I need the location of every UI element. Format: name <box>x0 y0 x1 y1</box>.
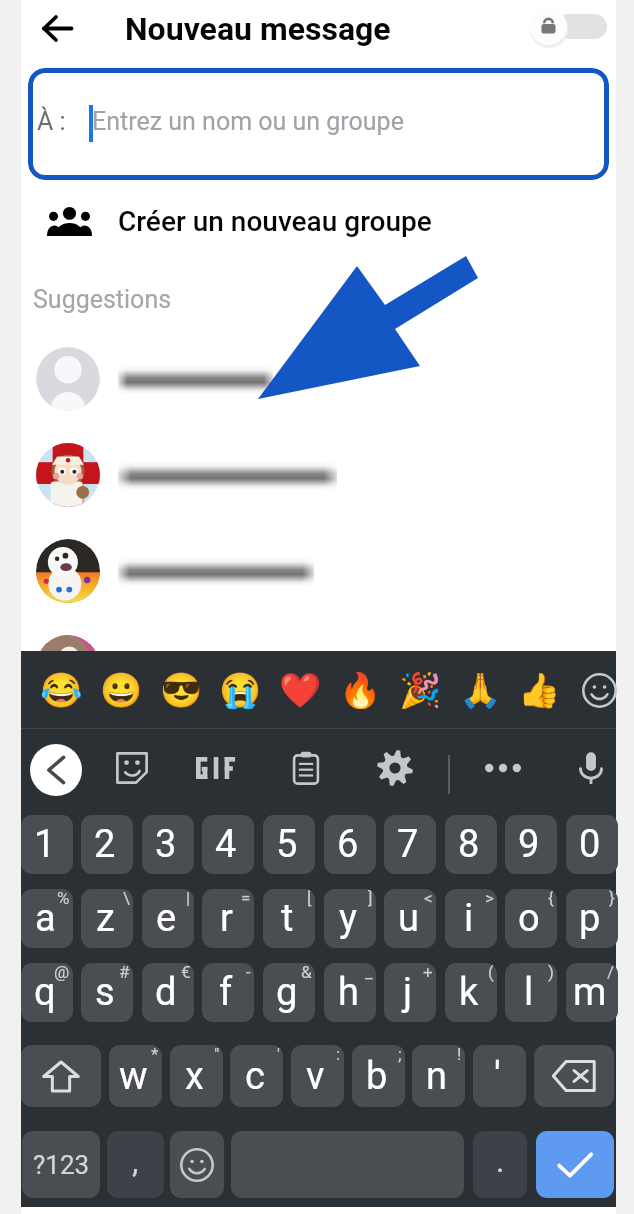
staticText: 8 <box>458 822 480 867</box>
button[interactable]: Emoji <box>452 651 508 729</box>
button[interactable]: u <box>384 889 436 948</box>
staticText: Nouveau message <box>125 10 391 48</box>
staticText: _ <box>365 963 373 982</box>
button[interactable]: d <box>142 963 194 1022</box>
staticText: - <box>246 963 251 982</box>
staticText: 3 <box>155 822 177 867</box>
button[interactable]: 2 <box>81 815 133 874</box>
button[interactable]: Emoji <box>392 651 448 729</box>
button[interactable]: Back <box>31 2 83 54</box>
staticText: 😎 <box>160 670 203 710</box>
staticText: s <box>95 970 115 1015</box>
button[interactable]: 9 <box>505 815 557 874</box>
button[interactable] <box>21 346 616 442</box>
button[interactable]: More emoji <box>571 651 627 729</box>
staticText: ! <box>457 1045 462 1064</box>
button[interactable]: 8 <box>445 815 497 874</box>
button[interactable]: Emoji <box>272 651 328 729</box>
button[interactable]: s <box>81 963 133 1022</box>
staticText: = <box>241 889 251 908</box>
button[interactable]: Secret conversation <box>523 0 607 56</box>
button[interactable]: Créer un nouveau groupe <box>21 186 616 256</box>
staticText: # <box>119 963 130 982</box>
button[interactable]: 1 <box>21 815 73 874</box>
button[interactable]: t <box>263 889 315 948</box>
staticText: % <box>57 889 70 908</box>
staticText: 1 <box>34 822 56 867</box>
staticText: ; <box>398 1045 402 1064</box>
button[interactable]: Emoji <box>511 651 567 729</box>
staticText: . <box>496 1142 505 1180</box>
button[interactable]: À : <box>28 68 609 180</box>
button[interactable]: Send <box>536 1131 614 1198</box>
button[interactable]: l <box>505 963 557 1022</box>
staticText: c <box>245 1054 265 1099</box>
button[interactable]: Shift <box>21 1045 101 1107</box>
button[interactable]: 0 <box>566 815 618 874</box>
button[interactable]: Settings <box>367 742 423 794</box>
button[interactable]: . <box>473 1131 527 1198</box>
button[interactable]: g <box>263 963 315 1022</box>
button[interactable]: v <box>291 1045 344 1107</box>
button[interactable]: Voice input <box>563 742 619 794</box>
button[interactable]: e <box>142 889 194 948</box>
staticText: i <box>464 896 474 941</box>
button[interactable]: , <box>107 1131 164 1198</box>
button[interactable]: i <box>445 889 497 948</box>
button[interactable]: ?123 <box>22 1131 100 1198</box>
button[interactable]: Emoji keyboard <box>170 1131 224 1198</box>
button[interactable]: r <box>202 889 254 948</box>
button[interactable]: Emoji <box>332 651 388 729</box>
button[interactable]: 3 <box>142 815 194 874</box>
staticText: [ <box>307 889 312 908</box>
button[interactable]: n <box>412 1045 465 1107</box>
button[interactable]: GIF <box>184 742 248 794</box>
button[interactable]: Back to keyboard <box>30 744 82 796</box>
button[interactable]: p <box>566 889 618 948</box>
button[interactable]: More options <box>475 742 531 794</box>
button[interactable]: ' <box>473 1045 526 1107</box>
button[interactable]: j <box>384 963 436 1022</box>
button[interactable] <box>21 634 616 730</box>
button[interactable] <box>21 442 616 538</box>
button[interactable]: q <box>21 963 73 1022</box>
button[interactable]: 6 <box>324 815 376 874</box>
button[interactable]: 4 <box>202 815 254 874</box>
staticText: 0 <box>579 822 601 867</box>
staticText: p <box>579 896 601 941</box>
button[interactable]: Stickers <box>104 742 160 794</box>
staticText: 4 <box>215 822 237 867</box>
button[interactable]: a <box>21 889 73 948</box>
button[interactable]: 5 <box>263 815 315 874</box>
staticText: 👍 <box>518 670 561 710</box>
button[interactable]: Emoji <box>93 651 149 729</box>
staticText: { <box>548 889 554 908</box>
button[interactable]: Emoji <box>153 651 209 729</box>
staticText: ] <box>368 889 373 908</box>
button[interactable]: w <box>109 1045 162 1107</box>
button[interactable]: y <box>324 889 376 948</box>
button[interactable] <box>21 538 616 634</box>
button[interactable]: c <box>230 1045 283 1107</box>
button[interactable]: 7 <box>384 815 436 874</box>
staticText: u <box>398 896 419 941</box>
button[interactable]: Emoji <box>212 651 268 729</box>
button[interactable]: h <box>324 963 376 1022</box>
button[interactable]: x <box>170 1045 223 1107</box>
button[interactable]: Emoji <box>33 651 89 729</box>
staticText: o <box>518 896 540 941</box>
staticText: 😂 <box>40 670 83 710</box>
button[interactable]: b <box>352 1045 405 1107</box>
button[interactable]: m <box>566 963 618 1022</box>
staticText: @ <box>54 963 70 982</box>
button[interactable]: Backspace <box>534 1045 614 1107</box>
button[interactable]: o <box>505 889 557 948</box>
button[interactable]: f <box>202 963 254 1022</box>
button[interactable]: Clipboard <box>278 742 334 794</box>
button[interactable]: z <box>81 889 133 948</box>
staticText: " <box>214 1045 220 1064</box>
staticText: | <box>186 889 191 908</box>
staticText: * <box>151 1045 159 1064</box>
button[interactable]: k <box>445 963 497 1022</box>
